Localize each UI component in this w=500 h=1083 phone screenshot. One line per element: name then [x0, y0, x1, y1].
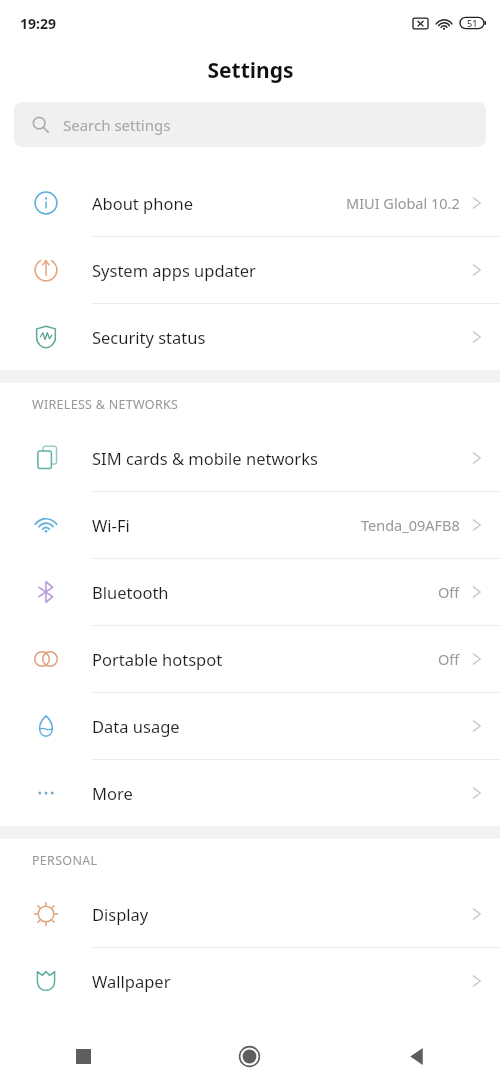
staticText: Security status	[92, 326, 472, 348]
staticText: Wallpaper	[92, 970, 472, 992]
staticText: MIUI Global 10.2	[346, 193, 460, 213]
staticText: More	[92, 782, 472, 804]
button[interactable]: Bluetooth	[0, 559, 500, 625]
staticText: Bluetooth	[92, 581, 438, 603]
staticText: Tenda_09AFB8	[361, 515, 460, 535]
staticText: 19:29	[20, 14, 56, 33]
button[interactable]: About phone	[0, 170, 500, 236]
staticText: Off	[438, 582, 460, 602]
button[interactable]: Wallpaper	[0, 948, 500, 1014]
button[interactable]: System apps updater	[0, 237, 500, 303]
staticText: PERSONAL	[32, 852, 98, 869]
button[interactable]: Security status	[0, 304, 500, 370]
staticText: System apps updater	[92, 259, 472, 281]
button[interactable]: Back	[333, 1029, 500, 1083]
button[interactable]: More	[0, 760, 500, 826]
staticText: 51	[467, 17, 478, 29]
button[interactable]: Recent apps	[0, 1029, 166, 1083]
staticText: Off	[438, 649, 460, 669]
staticText: WIRELESS & NETWORKS	[32, 396, 179, 413]
staticText: Settings	[207, 56, 294, 85]
staticText: About phone	[92, 192, 346, 214]
button[interactable]: Home	[166, 1029, 333, 1083]
staticText: SIM cards & mobile networks	[92, 447, 472, 469]
staticText: Wi-Fi	[92, 514, 361, 536]
staticText: Portable hotspot	[92, 648, 438, 670]
staticText: Search settings	[63, 115, 171, 135]
button[interactable]: Data usage	[0, 693, 500, 759]
staticText: Data usage	[92, 715, 472, 737]
button[interactable]: SIM cards & mobile networks	[0, 425, 500, 491]
staticText: Display	[92, 903, 472, 925]
button[interactable]: Search settings	[14, 102, 486, 147]
button[interactable]: Wi-Fi	[0, 492, 500, 558]
button[interactable]: Display	[0, 881, 500, 947]
button[interactable]: Portable hotspot	[0, 626, 500, 692]
